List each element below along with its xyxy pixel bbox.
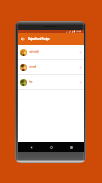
button[interactable]: घेवर: [18, 75, 84, 89]
staticText: Rajasthani Recipe: [28, 37, 50, 41]
staticText: दाल बाटी: [29, 65, 37, 69]
button[interactable]: कढ़ी पकौड़ी: [18, 45, 84, 59]
staticText: कढ़ी पकौड़ी: [29, 50, 39, 54]
button[interactable]: Home: [47, 143, 55, 151]
button[interactable]: Back: [27, 143, 35, 151]
button[interactable]: Back: [18, 33, 28, 45]
staticText: घेवर: [29, 80, 33, 84]
button[interactable]: Recent apps: [67, 143, 75, 151]
button[interactable]: दाल बाटी: [18, 60, 84, 74]
